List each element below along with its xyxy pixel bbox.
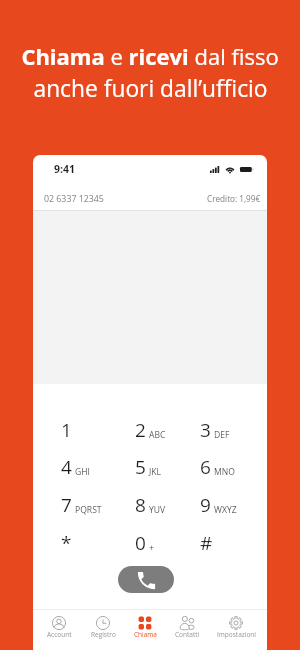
staticText: # xyxy=(200,530,211,556)
staticText: JKL xyxy=(149,466,162,478)
staticText: anche fuori dall’ufficio xyxy=(33,73,268,104)
button[interactable]: Contatti xyxy=(164,612,210,642)
button[interactable]: 6 xyxy=(176,450,234,482)
staticText: 2 xyxy=(135,417,146,443)
button[interactable]: # xyxy=(176,526,234,558)
staticText: 1 xyxy=(61,417,72,443)
staticText: Chiama e ricevi dal fisso xyxy=(21,41,279,71)
button[interactable]: 5 xyxy=(111,450,169,482)
staticText: 6 xyxy=(200,454,211,480)
staticText: GHI xyxy=(75,466,90,478)
button[interactable]: Chiama xyxy=(122,612,168,642)
button[interactable]: Call xyxy=(118,566,174,593)
staticText: YUV xyxy=(149,504,166,516)
staticText: DEF xyxy=(214,429,230,441)
staticText: PQRST xyxy=(75,504,102,516)
button[interactable]: Impostazioni xyxy=(213,612,259,642)
button[interactable]: 8 xyxy=(111,488,169,520)
staticText: Account xyxy=(47,630,72,639)
button[interactable]: 4 xyxy=(37,450,95,482)
staticText: Credito: 1,99€ xyxy=(207,193,261,204)
staticText: 5 xyxy=(135,454,146,480)
button[interactable]: Account xyxy=(36,612,82,642)
staticText: 0 xyxy=(135,530,146,556)
staticText: MNO xyxy=(214,466,235,478)
staticText: 4 xyxy=(61,454,72,480)
button[interactable]: 0 xyxy=(111,526,169,558)
button[interactable]: 9 xyxy=(176,488,234,520)
button[interactable]: * xyxy=(37,526,95,558)
button[interactable]: 1 xyxy=(37,413,95,445)
staticText: Chiama xyxy=(134,630,157,639)
staticText: 8 xyxy=(135,492,146,518)
staticText: + xyxy=(149,542,154,554)
staticText: 7 xyxy=(61,492,72,518)
staticText: 9:41 xyxy=(54,162,76,176)
staticText: WXYZ xyxy=(214,504,237,516)
staticText: Contatti xyxy=(175,630,200,639)
staticText: Registro xyxy=(91,630,116,639)
button[interactable]: 3 xyxy=(176,413,234,445)
staticText: 02 6337 12345 xyxy=(44,193,104,205)
staticText: * xyxy=(61,530,72,556)
staticText: ABC xyxy=(149,429,166,441)
button[interactable]: 7 xyxy=(37,488,95,520)
button[interactable]: Registro xyxy=(80,612,126,642)
staticText: 9 xyxy=(200,492,211,518)
staticText: 3 xyxy=(200,417,211,443)
button[interactable]: 2 xyxy=(111,413,169,445)
staticText: Impostazioni xyxy=(217,630,256,639)
